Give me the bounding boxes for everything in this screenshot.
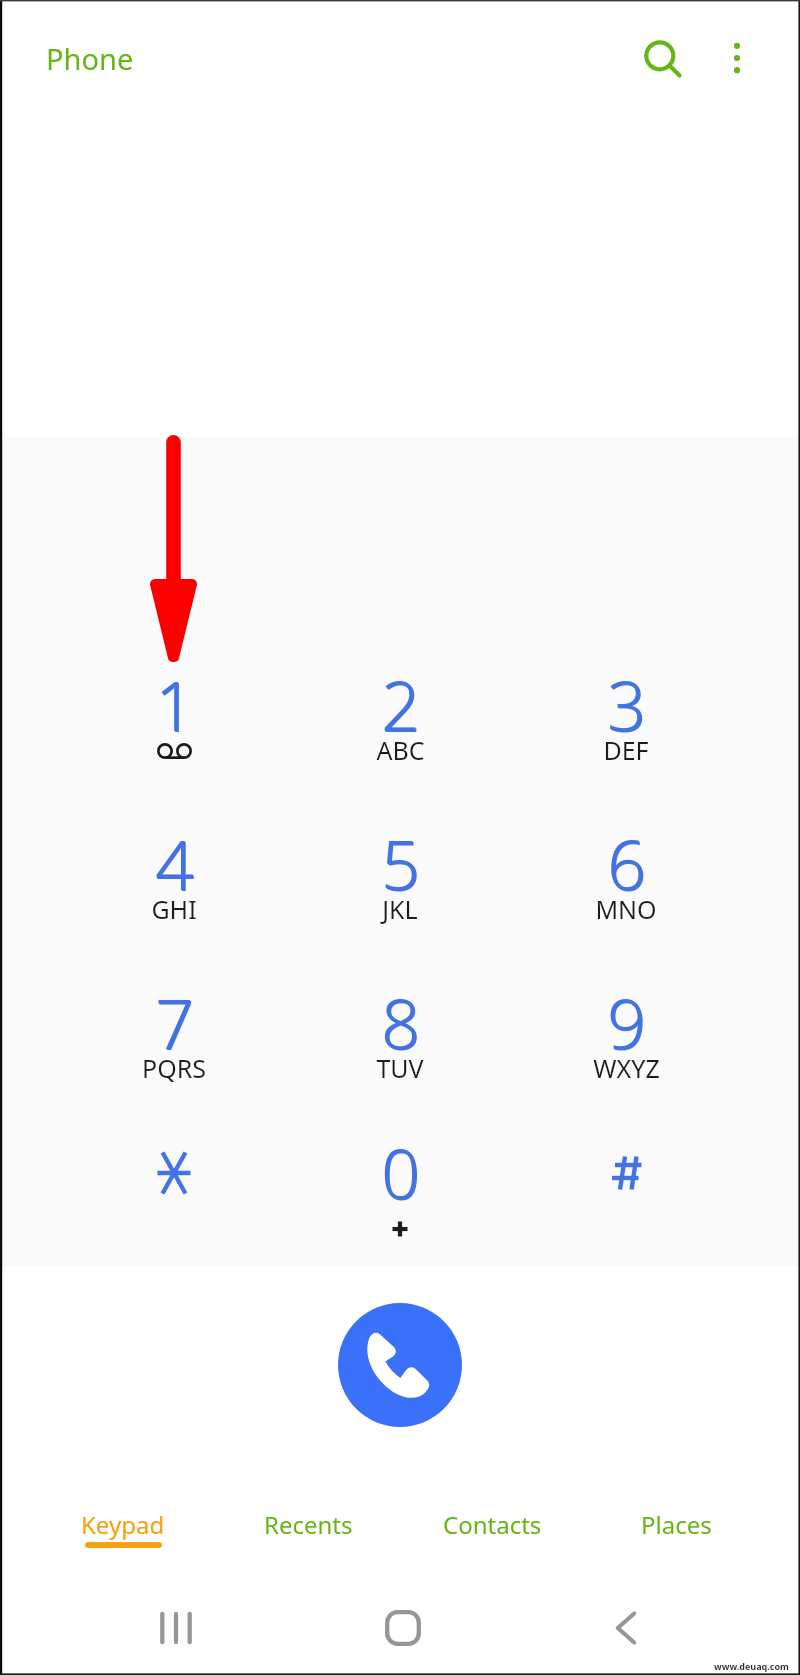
staticText: JKL	[382, 892, 418, 926]
staticText: 1	[155, 658, 194, 751]
button[interactable]: 5	[300, 802, 500, 942]
staticText: 9	[608, 977, 647, 1070]
staticText: WXYZ	[593, 1051, 660, 1085]
staticText: ABC	[376, 733, 425, 767]
staticText: 8	[382, 977, 421, 1070]
button[interactable]: 0	[300, 1111, 500, 1251]
staticText: Recents	[264, 1508, 353, 1541]
staticText: 6	[607, 817, 646, 910]
staticText: Keypad	[81, 1508, 165, 1541]
staticText: 0	[382, 1127, 421, 1220]
staticText: 5	[381, 817, 420, 910]
button[interactable]: Recent apps	[138, 1598, 218, 1658]
staticText: PQRS	[142, 1051, 206, 1085]
staticText: 9	[607, 976, 646, 1069]
button[interactable]: 3	[526, 643, 726, 783]
button[interactable]: 4	[74, 802, 274, 942]
staticText: 4	[156, 818, 195, 911]
button[interactable]: Places	[592, 1490, 760, 1562]
staticText: 6	[608, 818, 647, 911]
button[interactable]: 6	[526, 802, 726, 942]
staticText: 4	[155, 817, 194, 910]
staticText: 2	[381, 658, 420, 751]
button[interactable]: Back	[586, 1598, 666, 1658]
staticText: 2	[382, 659, 421, 752]
staticText: MNO	[595, 892, 657, 926]
button[interactable]: Contacts	[408, 1490, 576, 1562]
staticText: 0	[381, 1126, 420, 1219]
button[interactable]	[74, 1111, 274, 1251]
staticText: TUV	[376, 1051, 424, 1085]
button[interactable]: Keypad	[39, 1490, 207, 1562]
button[interactable]: 2	[300, 643, 500, 783]
staticText: www.deuaq.com	[714, 1660, 789, 1672]
staticText: Phone	[46, 39, 134, 78]
button[interactable]	[526, 1111, 726, 1251]
button[interactable]: 8	[300, 961, 500, 1101]
button[interactable]: Call	[338, 1303, 462, 1427]
button[interactable]: 1	[74, 643, 274, 783]
staticText: 7	[156, 977, 195, 1070]
button[interactable]: Search	[631, 27, 695, 91]
button[interactable]: More options	[705, 26, 769, 90]
staticText: Places	[641, 1508, 712, 1541]
staticText: 1	[156, 659, 195, 752]
staticText: DEF	[603, 733, 649, 767]
staticText: Contacts	[443, 1508, 542, 1541]
staticText: 7	[155, 976, 194, 1069]
button[interactable]: 7	[74, 961, 274, 1101]
staticText: GHI	[151, 892, 197, 926]
staticText: 3	[608, 659, 647, 752]
button[interactable]: Recents	[224, 1490, 392, 1562]
button[interactable]: 9	[526, 961, 726, 1101]
button[interactable]: Home	[363, 1598, 443, 1658]
staticText: 8	[381, 976, 420, 1069]
staticText: 3	[607, 658, 646, 751]
staticText: 5	[382, 818, 421, 911]
